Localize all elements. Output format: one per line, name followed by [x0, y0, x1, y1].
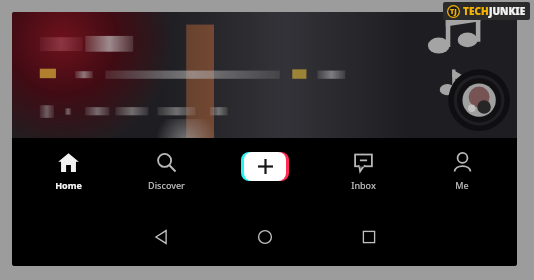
staticText: Inbox: [351, 179, 376, 191]
button[interactable]: Home: [25, 146, 111, 195]
staticText: TECH: [463, 4, 489, 18]
button[interactable]: Home: [237, 209, 293, 265]
button[interactable]: Me: [419, 146, 505, 195]
button[interactable]: Create: [222, 150, 308, 181]
staticText: TJ: [450, 7, 457, 17]
staticText: Discover: [148, 179, 185, 191]
button[interactable]: Discover: [123, 146, 209, 195]
staticText: Home: [55, 179, 82, 191]
staticText: JUNKIE: [489, 4, 526, 18]
staticText: Me: [455, 179, 469, 191]
button[interactable]: Back: [133, 209, 189, 265]
button[interactable]: Inbox: [320, 146, 406, 195]
button[interactable]: Recent apps: [341, 209, 397, 265]
